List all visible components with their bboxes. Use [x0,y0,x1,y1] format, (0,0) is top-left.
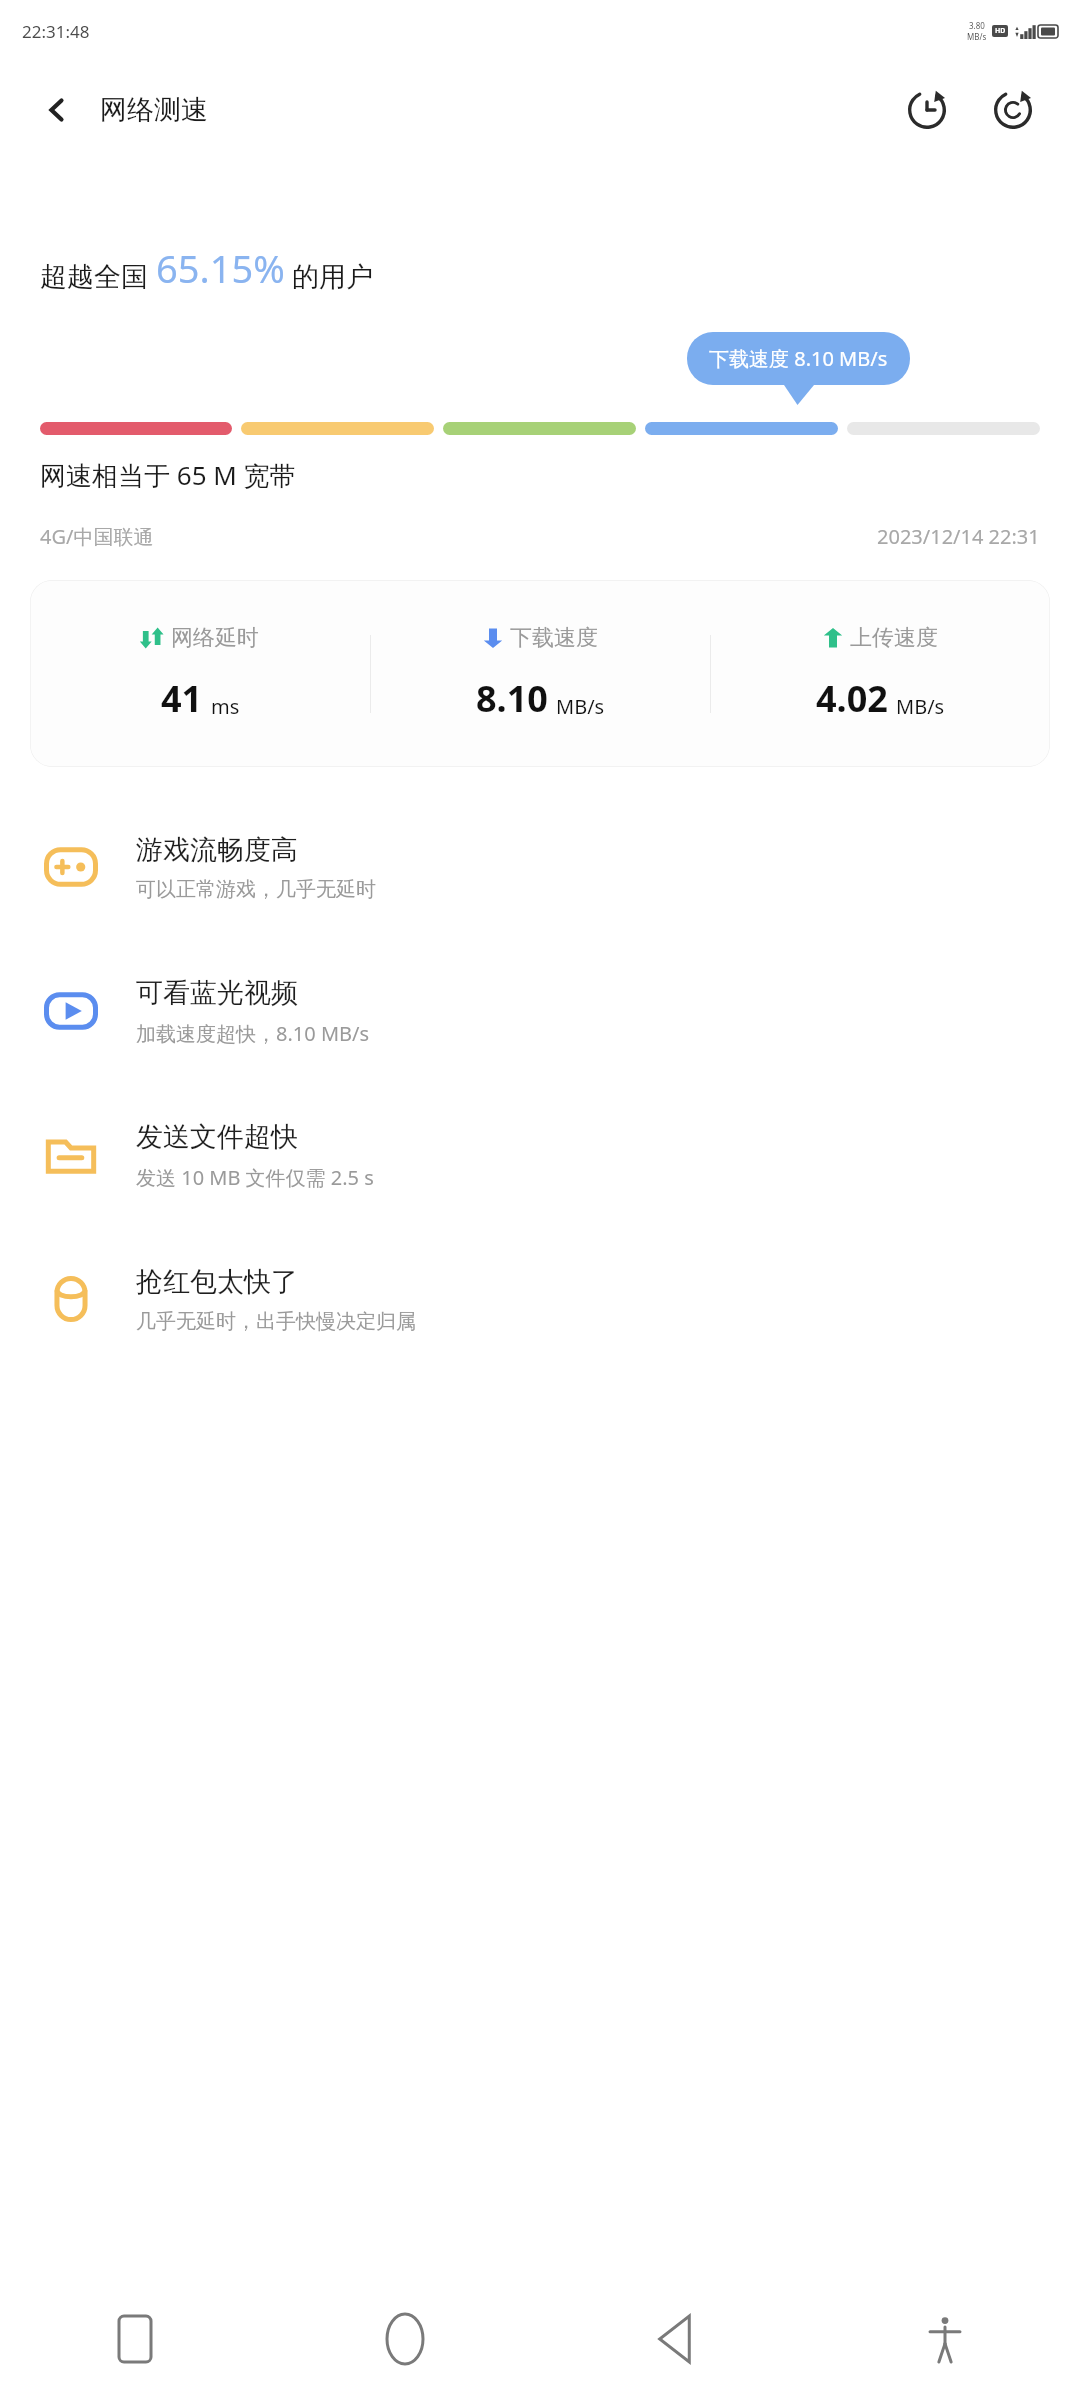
button[interactable]: Back [540,2270,810,2408]
staticText: 发送 10 MB 文件仅需 2.5 s [136,1164,374,1191]
staticText: 网络测速 [100,93,208,127]
staticText: 8.10 [476,674,548,723]
staticText: 41 [161,674,203,723]
button[interactable]: 游戏流畅度高 [0,795,1080,939]
button[interactable]: 发送文件超快 [0,1083,1080,1227]
button[interactable]: 抢红包太快了 [0,1227,1080,1371]
staticText: 下载速度 [510,624,598,652]
staticText: 加载速度超快，8.10 MB/s [136,1020,370,1047]
staticText: 游戏流畅度高 [136,833,298,867]
button[interactable]: Recents [0,2270,270,2408]
staticText: 抢红包太快了 [136,1265,298,1299]
staticText: MB/s [556,693,605,720]
staticText: HD [995,26,1006,36]
staticText: 可看蓝光视频 [136,976,298,1010]
staticText: 4.02 [816,674,888,723]
staticText: 网络延时 [171,624,259,652]
staticText: 超越全国 [40,257,156,294]
staticText: 4G/中国联通 [40,523,154,550]
staticText: 发送文件超快 [136,1120,298,1154]
staticText: 上传速度 [850,624,938,652]
staticText: 65.15% [156,242,285,294]
staticText: MB/s [967,31,987,42]
staticText: 22:31:48 [22,20,90,43]
staticText: 可以正常游戏，几乎无延时 [136,877,376,902]
button[interactable]: Back [34,87,80,133]
staticText: 3.80 [969,20,985,31]
staticText: 下载速度 8.10 MB/s [709,345,888,372]
button[interactable]: 网络延时 [30,580,1050,767]
button[interactable]: Refresh [984,81,1042,139]
button[interactable]: Accessibility [810,2270,1080,2408]
button[interactable]: 可看蓝光视频 [0,939,1080,1083]
staticText: 2023/12/14 22:31 [877,523,1040,550]
staticText: MB/s [896,693,945,720]
staticText: ms [211,693,240,720]
staticText: 几乎无延时，出手快慢决定归属 [136,1309,416,1334]
button[interactable]: History [898,81,956,139]
button[interactable]: Home [270,2270,540,2408]
staticText: 网速相当于 65 M 宽带 [40,457,296,493]
staticText: 的用户 [285,257,374,294]
